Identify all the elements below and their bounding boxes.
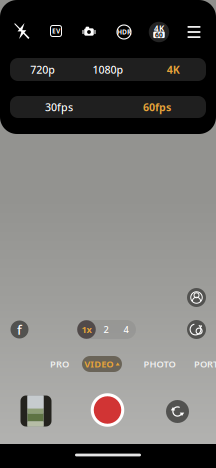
button[interactable]: Photo library	[20, 395, 51, 426]
staticText: 60	[155, 30, 163, 39]
button[interactable]: 1080p	[75, 58, 141, 81]
staticText: 4	[123, 323, 128, 336]
button[interactable]: 720p	[10, 58, 75, 81]
button[interactable]: PORTRAIT	[194, 356, 216, 372]
button[interactable]: 2	[96, 320, 116, 339]
button[interactable]: Camera mode	[82, 25, 96, 36]
button[interactable]: Portrait mode	[187, 288, 206, 307]
button[interactable]: VIDEO	[82, 356, 122, 372]
button[interactable]: 30fps	[10, 96, 108, 118]
button[interactable]: 1x	[77, 320, 96, 339]
button[interactable]: PHOTO	[143, 356, 175, 372]
button[interactable]: Flash off	[14, 23, 29, 39]
staticText: 4K	[154, 23, 164, 34]
button[interactable]: Switch camera	[166, 400, 189, 423]
staticText: 1x	[81, 323, 91, 336]
staticText: 4K	[167, 62, 180, 77]
button[interactable]: 60fps	[108, 96, 206, 118]
staticText: 1080p	[92, 62, 123, 77]
button[interactable]: 4K 60 fps	[149, 22, 169, 42]
button[interactable]: More settings	[187, 25, 200, 38]
staticText: 720p	[30, 62, 55, 77]
button[interactable]: HDR	[117, 25, 131, 39]
button[interactable]: PRO	[50, 356, 69, 372]
button[interactable]: Exposure compensation	[50, 25, 61, 36]
staticText: 60fps	[143, 100, 171, 114]
staticText: VIDEO	[84, 358, 113, 370]
staticText: EV	[52, 27, 60, 35]
button[interactable]: Filters	[187, 320, 206, 339]
button[interactable]: 4K	[141, 58, 206, 81]
staticText: 2	[103, 323, 108, 336]
staticText: PHOTO	[143, 358, 175, 370]
button[interactable]: 4	[116, 320, 136, 339]
staticText: PORTRAIT	[194, 358, 216, 370]
staticText: HDR	[117, 28, 131, 36]
staticText: f	[17, 321, 22, 338]
staticText: 30fps	[45, 100, 73, 114]
staticText: PRO	[50, 358, 69, 370]
button[interactable]: Start recording	[90, 393, 124, 427]
button[interactable]: Aperture	[10, 320, 28, 338]
